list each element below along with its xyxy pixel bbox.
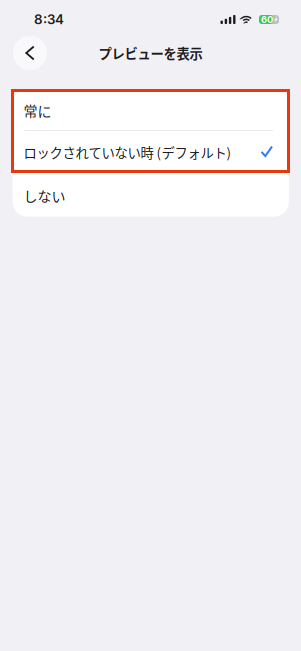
button[interactable]: 常に xyxy=(12,89,289,130)
staticText: プレビューを表示 xyxy=(98,43,202,63)
staticText: 8:34 xyxy=(34,11,64,27)
staticText: しない xyxy=(23,185,65,206)
staticText: ロックされていない時 (デフォルト) xyxy=(23,143,231,162)
staticText: 常に xyxy=(23,100,51,121)
staticText: 60 xyxy=(261,14,273,25)
button[interactable]: ロックされていない時 (デフォルト) xyxy=(12,131,289,172)
button[interactable]: Back xyxy=(13,36,47,70)
button[interactable]: しない xyxy=(12,173,289,217)
